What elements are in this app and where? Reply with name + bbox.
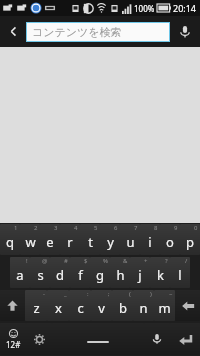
- staticText: h: [116, 266, 125, 284]
- staticText: 20:14: [173, 2, 197, 14]
- button[interactable]: 9: [160, 224, 180, 255]
- staticText: j: [138, 266, 142, 284]
- button[interactable]: $: [70, 257, 90, 288]
- staticText: 4: [74, 224, 78, 232]
- button[interactable]: @: [30, 257, 50, 288]
- staticText: 9: [174, 224, 178, 232]
- staticText: x: [55, 299, 62, 317]
- button[interactable]: ~: [154, 290, 175, 321]
- staticText: f: [78, 266, 83, 284]
- button[interactable]: :: [69, 290, 91, 321]
- button[interactable]: 3: [40, 224, 60, 255]
- button[interactable]: &: [110, 257, 130, 288]
- staticText: y: [107, 233, 114, 251]
- button[interactable]: 4: [60, 224, 80, 255]
- staticText: コンテンツを検索: [32, 25, 122, 39]
- staticText: /: [185, 257, 188, 265]
- button[interactable]: /: [170, 257, 190, 288]
- button[interactable]: 1: [0, 224, 20, 255]
- button[interactable]: Back: [0, 16, 26, 47]
- staticText: ?: [165, 257, 168, 265]
- staticText: $: [84, 257, 88, 265]
- staticText: 2: [34, 224, 38, 232]
- staticText: z: [33, 299, 40, 317]
- staticText: p: [186, 233, 194, 251]
- staticText: (: [129, 290, 131, 298]
- staticText: #: [64, 257, 68, 265]
- button[interactable]: ;: [91, 290, 112, 321]
- button[interactable]: Settings: [26, 323, 52, 355]
- staticText: 5: [94, 224, 98, 232]
- staticText: i: [148, 233, 152, 251]
- button[interactable]: +: [130, 257, 150, 288]
- staticText: w: [25, 233, 36, 251]
- button[interactable]: -: [25, 290, 47, 321]
- staticText: q: [6, 233, 14, 251]
- staticText: %: [103, 257, 108, 265]
- staticText: @: [42, 257, 48, 265]
- staticText: 0: [194, 224, 198, 232]
- staticText: -: [43, 290, 45, 298]
- staticText: &: [123, 257, 128, 265]
- button[interactable]: 0: [180, 224, 200, 255]
- staticText: ;: [108, 290, 110, 298]
- button[interactable]: 5: [80, 224, 100, 255]
- staticText: k: [157, 266, 164, 284]
- button[interactable]: 6: [100, 224, 120, 255]
- button[interactable]: Symbols: [0, 323, 26, 355]
- staticText: n: [139, 299, 148, 317]
- staticText: _: [64, 290, 67, 298]
- staticText: 6: [114, 224, 118, 232]
- staticText: u: [126, 233, 135, 251]
- staticText: l: [178, 266, 182, 284]
- staticText: ): [150, 290, 152, 298]
- button[interactable]: ): [133, 290, 154, 321]
- button[interactable]: ?: [150, 257, 170, 288]
- staticText: g: [96, 266, 104, 284]
- staticText: !: [26, 257, 28, 265]
- staticText: a: [16, 266, 24, 284]
- staticText: 3: [54, 224, 58, 232]
- staticText: 8: [154, 224, 158, 232]
- staticText: 7: [134, 224, 138, 232]
- button[interactable]: Space: [52, 323, 144, 355]
- staticText: v: [98, 299, 105, 317]
- button[interactable]: Shift: [0, 290, 25, 321]
- button[interactable]: 8: [140, 224, 160, 255]
- staticText: +: [144, 257, 148, 265]
- button[interactable]: Enter: [170, 323, 200, 355]
- button[interactable]: コンテンツを検索: [26, 22, 170, 42]
- button[interactable]: #: [50, 257, 70, 288]
- staticText: o: [166, 233, 174, 251]
- button[interactable]: !: [10, 257, 30, 288]
- staticText: 12#: [6, 339, 21, 350]
- staticText: c: [77, 299, 84, 317]
- staticText: e: [46, 233, 54, 251]
- button[interactable]: Voice input: [144, 323, 170, 355]
- staticText: t: [88, 233, 93, 251]
- staticText: m: [158, 299, 171, 317]
- button[interactable]: _: [47, 290, 69, 321]
- button[interactable]: 7: [120, 224, 140, 255]
- staticText: b: [119, 299, 127, 317]
- staticText: :: [87, 290, 89, 298]
- button[interactable]: Backspace: [175, 290, 200, 321]
- staticText: ~: [169, 290, 173, 298]
- button[interactable]: (: [112, 290, 133, 321]
- staticText: 1: [14, 224, 18, 232]
- button[interactable]: 2: [20, 224, 40, 255]
- staticText: d: [56, 266, 64, 284]
- button[interactable]: %: [90, 257, 110, 288]
- staticText: r: [67, 233, 73, 251]
- button[interactable]: Voice search: [170, 16, 200, 47]
- staticText: 100%: [134, 3, 155, 14]
- staticText: s: [37, 266, 44, 284]
